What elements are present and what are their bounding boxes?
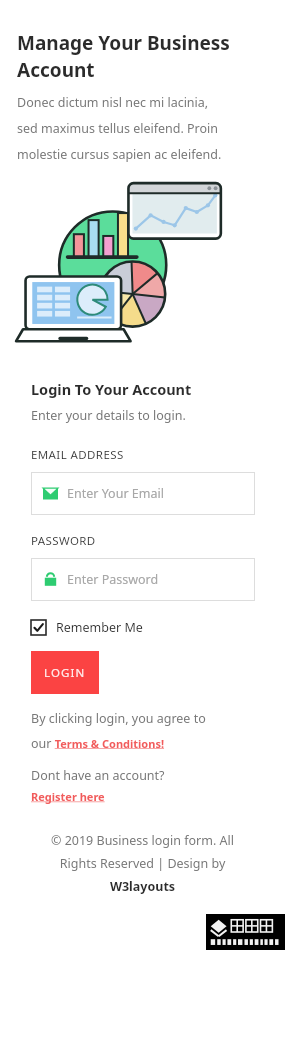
staticText: Login To Your Account	[31, 379, 192, 399]
staticText: EMAIL ADDRESS	[31, 447, 124, 463]
button[interactable]: Enter Password	[31, 558, 255, 601]
staticText: Manage Your Business Account	[17, 30, 230, 83]
staticText: Dont have an account?	[31, 767, 165, 784]
staticText: Remember Me	[56, 619, 143, 636]
button[interactable]: LOGIN	[31, 651, 99, 694]
button[interactable]: Register here	[31, 789, 105, 804]
staticText: © 2019 Business login form. All Rights R…	[12, 832, 273, 872]
button[interactable]: W3layouts	[0, 878, 285, 895]
staticText: Donec dictum nisl nec mi lacinia, sed ma…	[17, 94, 222, 163]
button[interactable]: By clicking login, you agree to our Term…	[31, 710, 206, 751]
staticText: Register here	[31, 789, 105, 804]
button[interactable]: Enter Your Email	[31, 472, 255, 515]
staticText: Enter Your Email	[67, 485, 164, 502]
staticText: LOGIN	[44, 665, 86, 681]
staticText: Enter your details to login.	[31, 407, 186, 424]
staticText: PASSWORD	[31, 533, 96, 549]
staticText: Enter Password	[67, 571, 159, 588]
button[interactable]: Remember Me	[31, 619, 143, 636]
